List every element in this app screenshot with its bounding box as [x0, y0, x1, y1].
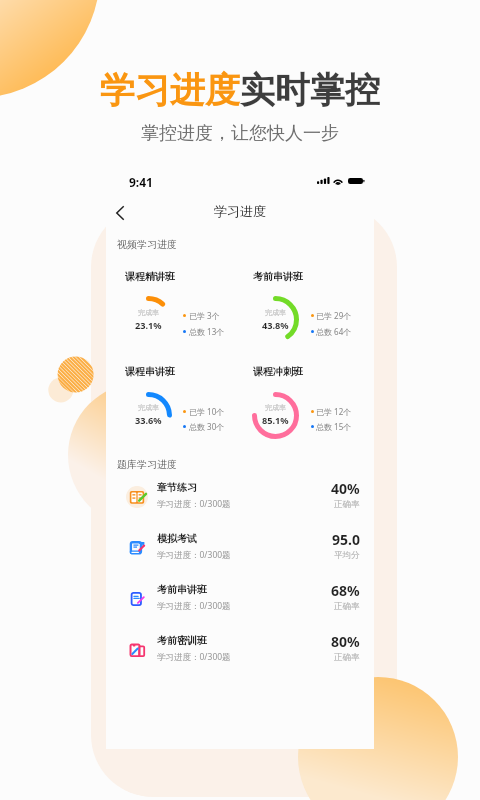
staticText: 完成率: [265, 308, 286, 317]
staticText: 完成率: [138, 403, 159, 412]
staticText: 9:41: [129, 174, 153, 190]
staticText: 23.1%: [135, 319, 162, 332]
staticText: 考前密训班: [157, 634, 207, 647]
staticText: 平均分: [334, 550, 360, 561]
staticText: 80%: [331, 632, 360, 651]
staticText: 模拟考试: [157, 532, 197, 545]
staticText: 学习进度：0/300题: [157, 600, 231, 612]
staticText: 视频学习进度: [117, 238, 177, 251]
staticText: 学习进度: [100, 68, 240, 112]
staticText: 考前串讲班: [157, 583, 207, 596]
staticText: 已学 3个: [189, 310, 220, 321]
staticText: 完成率: [265, 403, 286, 412]
button[interactable]: 考前密训班: [116, 625, 360, 675]
staticText: 已学 12个: [316, 406, 352, 417]
button[interactable]: 课程精讲班: [125, 270, 175, 283]
staticText: 40%: [331, 479, 360, 498]
staticText: 总数 30个: [189, 421, 225, 432]
staticText: 33.6%: [135, 414, 162, 427]
staticText: 总数 15个: [316, 421, 352, 432]
button[interactable]: 课程串讲班: [125, 365, 175, 378]
staticText: 题库学习进度: [117, 458, 177, 471]
staticText: 正确率: [334, 601, 360, 612]
staticText: 85.1%: [262, 414, 289, 427]
button[interactable]: 考前串讲班: [253, 270, 303, 283]
staticText: 掌控进度，让您快人一步: [0, 122, 480, 145]
staticText: 95.0: [332, 530, 360, 549]
staticText: 已学 29个: [316, 310, 352, 321]
button[interactable]: 模拟考试: [116, 523, 360, 573]
staticText: 学习进度：0/300题: [157, 651, 231, 663]
staticText: 总数 64个: [316, 326, 352, 337]
staticText: 学习进度：0/300题: [157, 498, 231, 510]
button[interactable]: 考前串讲班: [116, 574, 360, 624]
staticText: 章节练习: [157, 481, 197, 494]
staticText: 正确率: [334, 499, 360, 510]
staticText: 完成率: [138, 308, 159, 317]
staticText: 学习进度: [214, 203, 266, 219]
button[interactable]: 返回: [106, 199, 134, 227]
button[interactable]: 章节练习: [116, 472, 360, 522]
staticText: 总数 13个: [189, 326, 225, 337]
staticText: 已学 10个: [189, 406, 225, 417]
staticText: 学习进度：0/300题: [157, 549, 231, 561]
staticText: 实时掌控: [240, 68, 380, 112]
staticText: 正确率: [334, 652, 360, 663]
button[interactable]: 课程冲刺班: [253, 365, 303, 378]
staticText: 43.8%: [262, 319, 289, 332]
staticText: 68%: [331, 581, 360, 600]
